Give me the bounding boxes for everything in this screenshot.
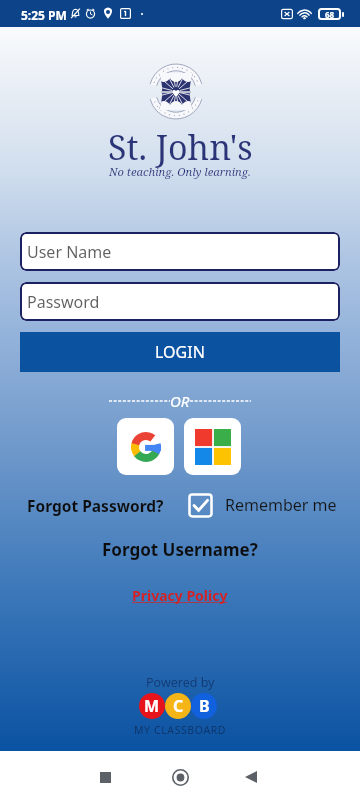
staticText: C [173, 695, 184, 717]
staticText: OR [170, 391, 190, 411]
button[interactable]: Forgot Password? [27, 494, 164, 516]
button[interactable]: User Name [20, 232, 340, 271]
button[interactable]: Remember me [187, 491, 337, 519]
staticText: St. John's [108, 124, 253, 170]
staticText: Forgot Password? [27, 495, 164, 516]
button[interactable]: Sign in with Microsoft [184, 418, 241, 475]
staticText: Powered by [146, 674, 215, 691]
button[interactable]: Password [20, 282, 340, 321]
staticText: B [199, 695, 210, 717]
staticText: Remember me [225, 494, 337, 516]
button[interactable]: Sign in with Google [117, 418, 174, 475]
staticText: 68 [325, 9, 335, 20]
staticText: Forgot Username? [102, 538, 258, 561]
staticText: Password [27, 291, 100, 313]
button[interactable]: LOGIN [20, 332, 340, 372]
button[interactable]: Home [158, 755, 202, 799]
staticText: MY CLASSBOARD [134, 723, 227, 737]
button[interactable]: Forgot Username? [102, 538, 258, 561]
button[interactable]: Privacy Policy [132, 586, 228, 605]
button[interactable]: Back [229, 755, 273, 799]
staticText: No teaching. Only learning. [109, 164, 251, 179]
button[interactable]: Recents [83, 755, 127, 799]
staticText: 5:25 PM [21, 7, 67, 23]
staticText: LOGIN [155, 341, 205, 363]
staticText: Privacy Policy [132, 586, 228, 605]
staticText: M [144, 695, 160, 717]
staticText: User Name [27, 241, 112, 263]
